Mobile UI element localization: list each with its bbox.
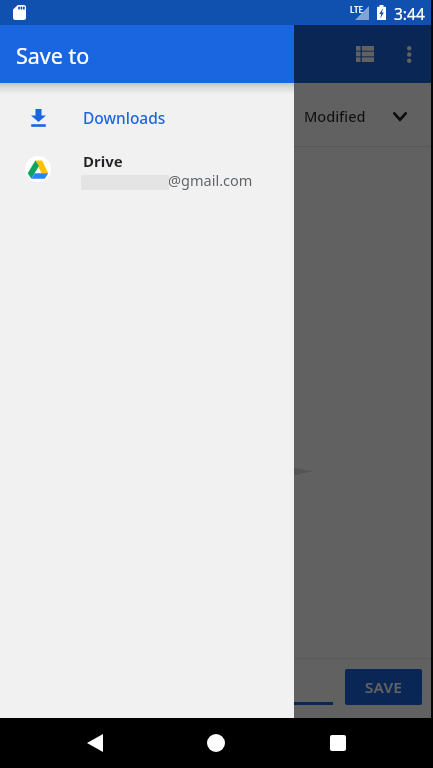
button[interactable]: Modified [295, 99, 407, 133]
button[interactable]: Downloads [0, 94, 294, 141]
button[interactable]: Recent apps [313, 718, 363, 768]
staticText: SAVE [365, 677, 403, 697]
button[interactable]: Home [191, 718, 241, 768]
staticText: Save to [16, 41, 90, 70]
staticText: 3:44 [394, 3, 425, 24]
staticText: Modified [304, 106, 366, 126]
button[interactable]: Drive [0, 141, 294, 199]
button[interactable]: SAVE [345, 669, 422, 705]
staticText: LTE [350, 4, 364, 15]
button[interactable]: List view [341, 25, 389, 83]
staticText: @gmail.com [168, 170, 253, 190]
button[interactable]: Back [70, 718, 120, 768]
staticText: Drive [83, 151, 123, 171]
button[interactable]: More options [390, 25, 428, 83]
staticText: Downloads [83, 107, 166, 128]
